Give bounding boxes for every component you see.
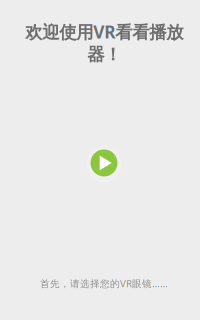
staticText: 欢迎使用VR看看播放器！ [25, 20, 183, 65]
staticText: 首先，请选择您的VR眼镜…… [40, 277, 168, 290]
button[interactable]: Play [90, 149, 117, 176]
